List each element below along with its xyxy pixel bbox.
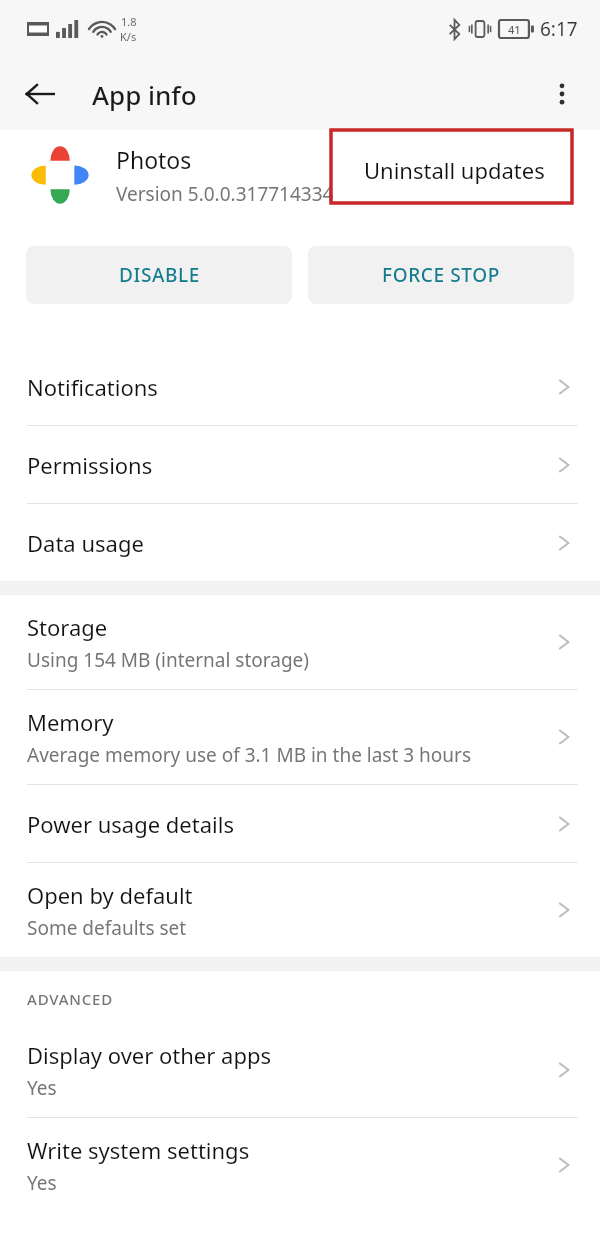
button[interactable]: Memory bbox=[0, 690, 600, 784]
staticText: K/s bbox=[120, 29, 137, 44]
staticText: Storage bbox=[27, 612, 108, 642]
staticText: FORCE STOP bbox=[382, 262, 500, 288]
staticText: 1.8 bbox=[121, 14, 137, 29]
button[interactable]: DISABLE bbox=[26, 246, 292, 304]
staticText: Open by default bbox=[27, 880, 193, 910]
button[interactable]: FORCE STOP bbox=[308, 246, 574, 304]
button[interactable]: Back bbox=[14, 68, 66, 120]
staticText: Power usage details bbox=[27, 809, 234, 839]
staticText: 6:17 bbox=[540, 16, 578, 42]
staticText: Photos bbox=[116, 144, 192, 175]
button[interactable]: Display over other apps bbox=[0, 1023, 600, 1117]
staticText: Version 5.0.0.317714334 bbox=[116, 181, 334, 207]
staticText: Yes bbox=[27, 1170, 57, 1196]
staticText: Data usage bbox=[27, 528, 144, 558]
staticText: Using 154 MB (internal storage) bbox=[27, 647, 310, 673]
staticText: Memory bbox=[27, 707, 114, 737]
staticText: Uninstall updates bbox=[364, 155, 545, 185]
staticText: Yes bbox=[27, 1075, 57, 1101]
button[interactable]: Power usage details bbox=[0, 785, 600, 862]
button[interactable]: Open by default bbox=[0, 863, 600, 957]
staticText: Write system settings bbox=[27, 1135, 250, 1165]
staticText: Some defaults set bbox=[27, 915, 187, 941]
staticText: DISABLE bbox=[119, 262, 200, 288]
button[interactable]: Storage bbox=[0, 595, 600, 689]
button[interactable]: Data usage bbox=[0, 504, 600, 581]
button[interactable]: Uninstall updates bbox=[334, 132, 574, 214]
staticText: 41 bbox=[508, 22, 521, 37]
staticText: Permissions bbox=[27, 450, 153, 480]
staticText: Average memory use of 3.1 MB in the last… bbox=[27, 742, 471, 768]
staticText: Notifications bbox=[27, 372, 158, 402]
staticText: ADVANCED bbox=[27, 989, 113, 1009]
staticText: App info bbox=[92, 77, 197, 112]
button[interactable]: Write system settings bbox=[0, 1118, 600, 1212]
button[interactable]: More options bbox=[536, 68, 588, 120]
button[interactable]: Permissions bbox=[0, 426, 600, 503]
button[interactable]: Notifications bbox=[0, 348, 600, 425]
staticText: Display over other apps bbox=[27, 1040, 272, 1070]
